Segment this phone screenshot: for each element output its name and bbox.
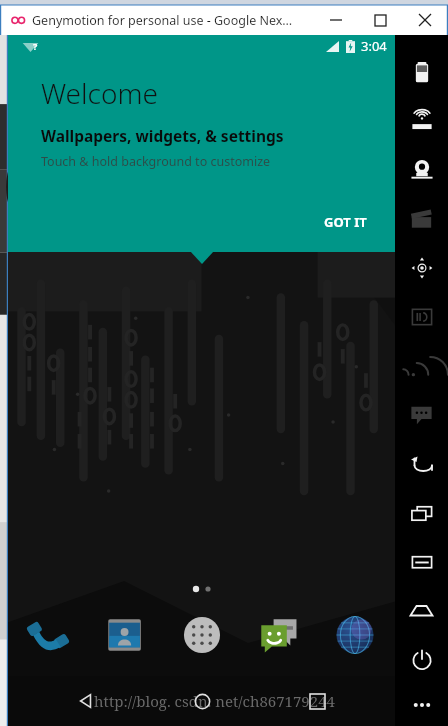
staticText: Touch & hold background to customize bbox=[41, 153, 271, 170]
button[interactable]: More bbox=[395, 684, 448, 726]
staticText: ? bbox=[33, 40, 38, 52]
button[interactable]: Browser bbox=[327, 607, 383, 663]
staticText: Wallpapers, widgets, & settings bbox=[41, 125, 284, 146]
button[interactable]: GOT IT bbox=[310, 206, 381, 238]
button[interactable]: Home bbox=[164, 676, 240, 726]
staticText: GOT IT bbox=[324, 213, 367, 231]
button[interactable]: Contacts bbox=[97, 607, 153, 663]
button[interactable]: Messaging bbox=[395, 390, 448, 439]
button[interactable]: Camera bbox=[395, 145, 448, 194]
button[interactable]: Recents bbox=[279, 676, 355, 726]
button[interactable]: Back bbox=[48, 676, 124, 726]
button[interactable]: Screen capture bbox=[395, 194, 448, 243]
button[interactable]: Close bbox=[402, 5, 448, 35]
button[interactable]: Copy bbox=[395, 488, 448, 537]
button[interactable]: Volume bbox=[395, 586, 448, 635]
button[interactable]: Network bbox=[395, 341, 448, 390]
button[interactable]: Minimize bbox=[314, 5, 358, 35]
button[interactable]: Power bbox=[395, 635, 448, 684]
staticText: 3:04 bbox=[361, 37, 387, 55]
button[interactable]: GPS bbox=[395, 96, 448, 145]
button[interactable]: Identifiers bbox=[395, 292, 448, 341]
button[interactable]: Phone bbox=[20, 607, 76, 663]
button[interactable]: Apps bbox=[174, 607, 230, 663]
button[interactable]: Battery bbox=[395, 47, 448, 96]
staticText: http://blog. csdn. net/ch867179244 bbox=[94, 691, 335, 711]
button[interactable]: Back bbox=[395, 439, 448, 488]
staticText: Genymotion for personal use - Google Nex… bbox=[32, 12, 293, 29]
button[interactable]: Accelerometer bbox=[395, 243, 448, 292]
button[interactable]: Maximize bbox=[358, 5, 402, 35]
button[interactable]: Messaging bbox=[250, 607, 306, 663]
staticText: Welcome bbox=[41, 74, 158, 112]
button[interactable]: Paste bbox=[395, 537, 448, 586]
